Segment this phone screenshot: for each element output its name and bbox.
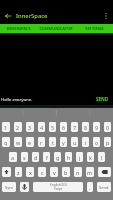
button[interactable]: 7: [71, 122, 78, 132]
staticText: g: [56, 154, 60, 161]
staticText: h: [67, 154, 71, 161]
staticText: English(US): [50, 183, 67, 187]
button[interactable]: 6: [60, 122, 67, 132]
button[interactable]: k: [87, 152, 94, 162]
button[interactable]: More options: [98, 8, 113, 24]
button[interactable]: r: [38, 137, 45, 147]
button[interactable]: c: [38, 167, 46, 177]
staticText: Swipe: [54, 187, 63, 191]
button[interactable]: q: [2, 137, 10, 147]
button[interactable]: Back: [0, 8, 16, 24]
button[interactable]: English(US): [33, 182, 83, 192]
button[interactable]: 2: [14, 122, 22, 132]
button[interactable]: ,: [87, 182, 93, 192]
button[interactable]: s: [21, 152, 28, 162]
staticText: 6: [62, 124, 66, 131]
button[interactable]: Backspace: [98, 167, 111, 177]
button[interactable]: m: [86, 167, 94, 177]
staticText: i: [85, 139, 87, 146]
button[interactable]: p: [104, 137, 111, 147]
staticText: q: [4, 139, 8, 146]
button[interactable]: 4: [38, 122, 45, 132]
button[interactable]: v: [50, 167, 58, 177]
staticText: z: [17, 169, 20, 176]
button[interactable]: n: [74, 167, 82, 177]
button[interactable]: COMMUNICATOR: [37, 24, 75, 33]
staticText: d: [34, 154, 38, 161]
button[interactable]: 5: [49, 122, 56, 132]
button[interactable]: 3: [26, 122, 34, 132]
button[interactable]: j: [76, 152, 83, 162]
staticText: r: [40, 139, 43, 146]
staticText: f: [46, 154, 48, 161]
button[interactable]: Shift: [2, 167, 11, 177]
staticText: ?: [55, 110, 58, 117]
button[interactable]: x: [26, 167, 34, 177]
button[interactable]: a: [9, 152, 17, 162]
staticText: k: [89, 154, 92, 161]
staticText: e: [28, 139, 32, 146]
staticText: COMMUNICATOR: [39, 26, 73, 31]
button[interactable]: t: [49, 137, 56, 147]
button[interactable]: SETTINGS: [75, 24, 113, 33]
button[interactable]: i: [82, 137, 89, 147]
staticText: SEND: [96, 96, 109, 102]
staticText: ,: [89, 184, 91, 190]
staticText: w: [16, 139, 21, 146]
staticText: 4: [40, 124, 44, 131]
staticText: p: [106, 139, 110, 146]
button[interactable]: z: [15, 167, 22, 177]
button[interactable]: b: [62, 167, 70, 177]
staticText: m: [87, 169, 93, 176]
staticText: t: [52, 139, 54, 146]
button[interactable]: 0: [104, 122, 111, 132]
button[interactable]: h: [65, 152, 72, 162]
staticText: 2: [16, 124, 20, 131]
staticText: INNERSPACE: [6, 26, 31, 31]
staticText: 8: [84, 124, 88, 131]
button[interactable]: SEND: [92, 94, 113, 104]
button[interactable]: y: [60, 137, 67, 147]
staticText: x: [29, 169, 32, 176]
staticText: 5: [51, 124, 55, 131]
button[interactable]: Sym: [2, 182, 16, 192]
staticText: Hello everyone.: [1, 96, 33, 102]
button[interactable]: 1: [2, 122, 10, 132]
button[interactable]: 8: [82, 122, 89, 132]
staticText: o: [95, 139, 99, 146]
button[interactable]: Send: [97, 182, 111, 192]
staticText: InnerSpace: [16, 12, 48, 20]
staticText: j: [79, 154, 81, 161]
button[interactable]: l: [98, 152, 105, 162]
staticText: c: [41, 169, 44, 176]
button[interactable]: INNERSPACE: [0, 24, 37, 33]
staticText: v: [53, 169, 56, 176]
staticText: Sym: [5, 185, 13, 190]
button[interactable]: g: [54, 152, 61, 162]
staticText: 9: [95, 124, 99, 131]
button[interactable]: e: [26, 137, 34, 147]
staticText: l: [101, 154, 103, 161]
staticText: 0: [106, 124, 110, 131]
staticText: s: [23, 154, 26, 161]
staticText: Send: [99, 185, 109, 190]
staticText: a: [11, 154, 15, 161]
staticText: 1: [4, 124, 8, 131]
staticText: u: [73, 139, 77, 146]
button[interactable]: o: [93, 137, 100, 147]
button[interactable]: f: [43, 152, 50, 162]
staticText: SETTINGS: [85, 26, 104, 31]
staticText: n: [76, 169, 80, 176]
button[interactable]: Voice input: [20, 182, 29, 192]
staticText: y: [62, 139, 65, 146]
button[interactable]: u: [71, 137, 78, 147]
button[interactable]: d: [32, 152, 39, 162]
button[interactable]: 9: [93, 122, 100, 132]
staticText: 7: [73, 124, 77, 131]
staticText: 3: [28, 124, 32, 131]
staticText: b: [64, 169, 68, 176]
button[interactable]: w: [14, 137, 22, 147]
